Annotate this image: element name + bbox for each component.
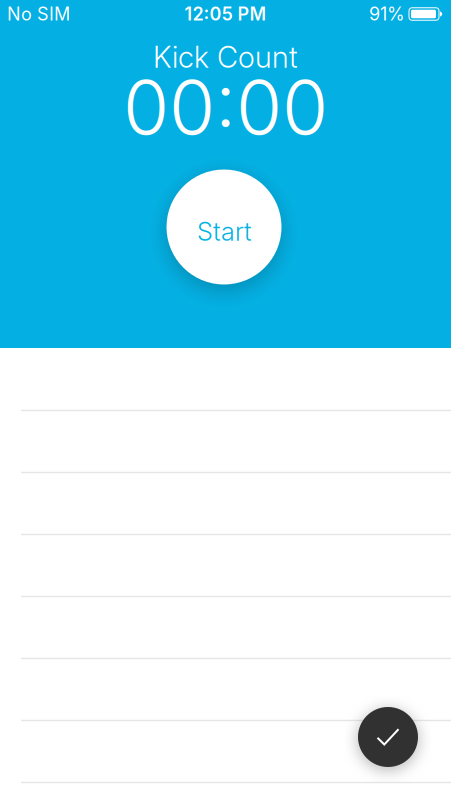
staticText: 00:00 xyxy=(123,62,328,152)
button[interactable]: Done xyxy=(358,707,418,767)
staticText: 91% xyxy=(369,3,405,25)
staticText: 12:05 PM xyxy=(184,3,266,25)
staticText: Kick Count xyxy=(153,39,298,75)
staticText: No SIM xyxy=(7,3,70,25)
button[interactable]: Start xyxy=(166,169,281,284)
staticText: Start xyxy=(197,216,251,247)
